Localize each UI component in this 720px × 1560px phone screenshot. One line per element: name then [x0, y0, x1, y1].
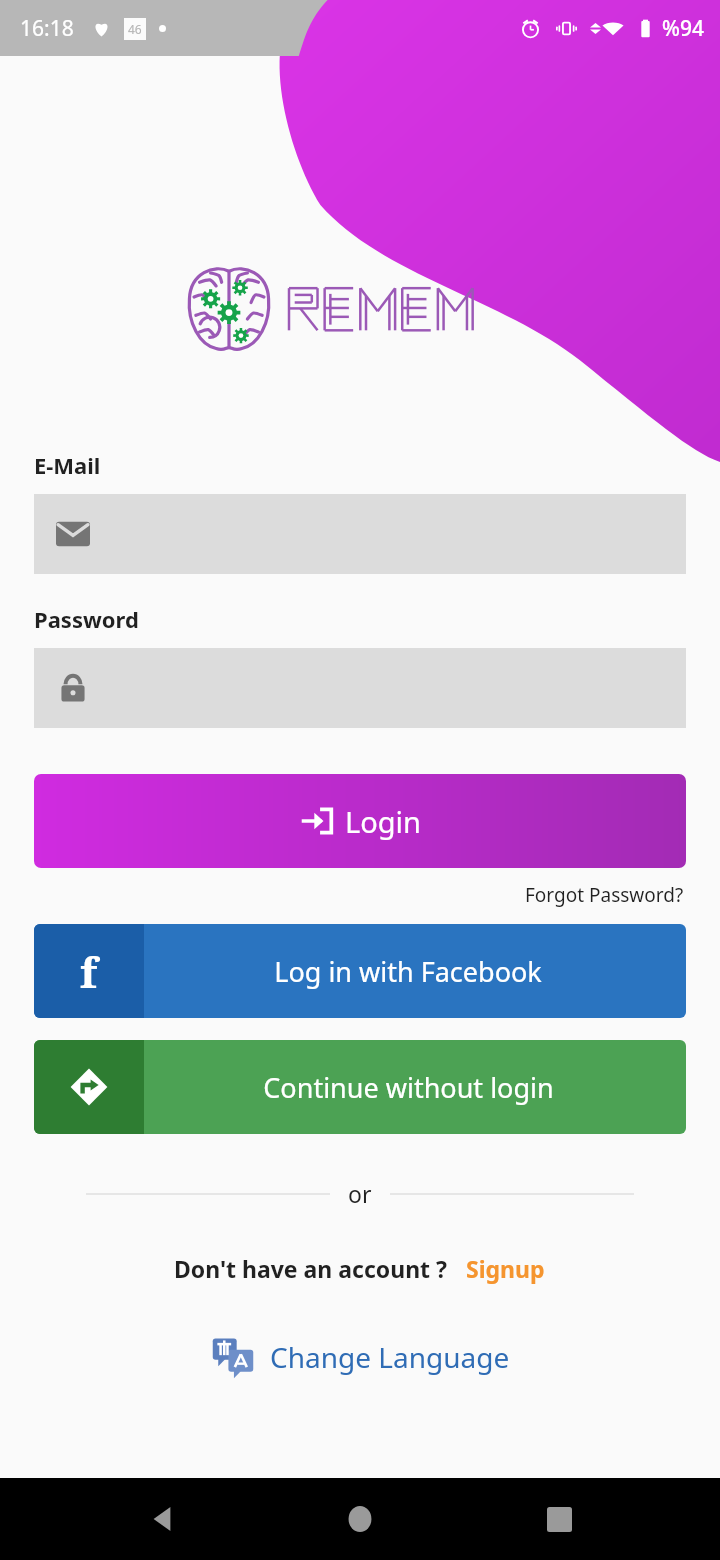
button[interactable]: Password	[34, 648, 686, 728]
staticText: or	[348, 1178, 372, 1209]
button[interactable]: Change Language	[204, 1330, 516, 1384]
button[interactable]: Email	[34, 494, 686, 574]
staticText: E-Mail	[34, 450, 101, 480]
staticText: Don't have an account ?	[174, 1253, 448, 1284]
button[interactable]: Home	[323, 1482, 397, 1556]
button[interactable]: Recent apps	[522, 1482, 596, 1556]
staticText: %94	[662, 14, 704, 43]
staticText: 16:18	[20, 14, 74, 43]
button[interactable]: Back	[125, 1482, 199, 1556]
staticText: Log in with Facebook	[274, 953, 542, 990]
staticText: Change Language	[270, 1338, 510, 1376]
button[interactable]: Login	[34, 774, 686, 868]
button[interactable]: Directions	[34, 1040, 686, 1134]
button[interactable]: Forgot Password?	[523, 880, 686, 910]
staticText: 46	[128, 21, 142, 37]
other: Password	[56, 671, 90, 705]
staticText: f	[80, 943, 98, 1000]
button[interactable]: Signup	[464, 1251, 547, 1286]
other: Directions	[69, 1067, 109, 1107]
staticText: Continue without login	[263, 1069, 554, 1106]
button[interactable]: Facebook	[34, 924, 686, 1018]
other: Email	[56, 517, 90, 551]
staticText: Login	[345, 802, 421, 841]
staticText: Password	[34, 604, 139, 634]
